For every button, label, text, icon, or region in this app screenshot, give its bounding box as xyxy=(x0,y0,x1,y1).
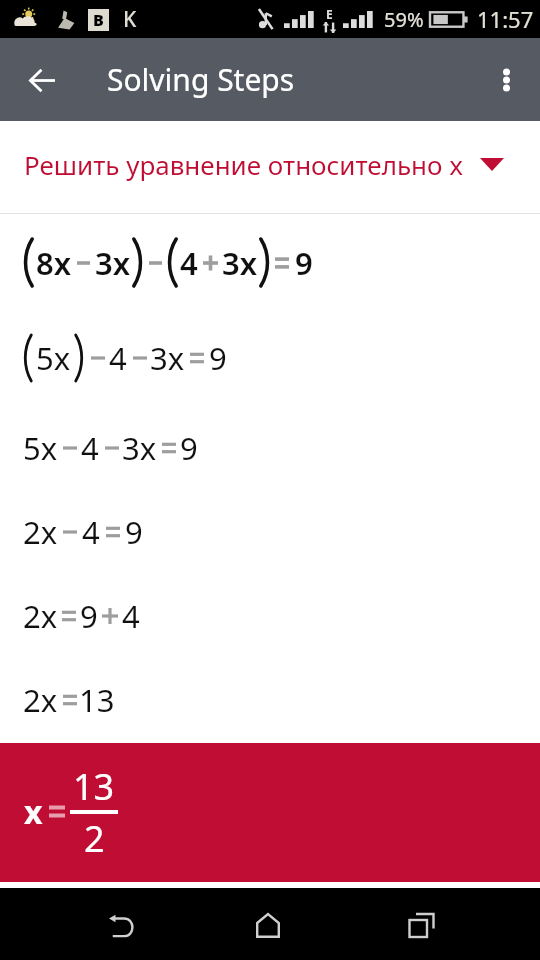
staticText: 4 xyxy=(82,511,100,553)
staticText: 4 xyxy=(122,595,140,637)
staticText: 3x xyxy=(150,337,185,379)
staticText: 9 xyxy=(180,427,198,469)
staticText: K xyxy=(123,5,137,34)
staticText: 4 xyxy=(180,242,198,284)
button[interactable]: More options xyxy=(482,56,530,104)
staticText: 2 xyxy=(84,814,105,863)
staticText: B xyxy=(93,9,104,31)
button[interactable]: 5x xyxy=(23,406,540,490)
staticText: Решить уравнение относительно x xyxy=(24,147,464,182)
staticText: Solving Steps xyxy=(107,59,295,100)
button[interactable]: 2x xyxy=(23,490,540,574)
staticText: 13 xyxy=(73,762,115,811)
staticText: 59% xyxy=(384,6,424,33)
staticText: 2x xyxy=(23,511,58,553)
staticText: 2x xyxy=(23,595,58,637)
button[interactable]: Back xyxy=(18,56,66,104)
staticText: 3x xyxy=(222,242,258,284)
staticText: 5x xyxy=(36,337,71,379)
staticText: 3x xyxy=(95,242,131,284)
staticText: 9 xyxy=(80,595,98,637)
staticText: 9 xyxy=(209,337,227,379)
staticText: 11:57 xyxy=(477,4,534,34)
button[interactable]: Решить уравнение относительно x xyxy=(0,121,540,213)
staticText: 4 xyxy=(81,427,99,469)
staticText: E xyxy=(326,6,333,22)
staticText: 9 xyxy=(295,242,313,284)
button[interactable]: 2x xyxy=(23,574,540,658)
staticText: 4 xyxy=(109,337,127,379)
staticText: 3x xyxy=(122,427,157,469)
button[interactable]: Recent apps xyxy=(385,888,457,960)
button[interactable]: Home xyxy=(232,888,304,960)
button[interactable]: Back xyxy=(85,888,157,960)
staticText: 13 xyxy=(79,679,115,721)
button[interactable]: 5x xyxy=(23,310,540,406)
staticText: 8x xyxy=(36,242,72,284)
button[interactable]: 8x xyxy=(23,214,540,310)
staticText: 5x xyxy=(23,427,58,469)
staticText: 2x xyxy=(23,679,58,721)
button[interactable]: 2x xyxy=(23,658,540,742)
staticText: x xyxy=(24,790,43,834)
staticText: 9 xyxy=(125,511,143,553)
